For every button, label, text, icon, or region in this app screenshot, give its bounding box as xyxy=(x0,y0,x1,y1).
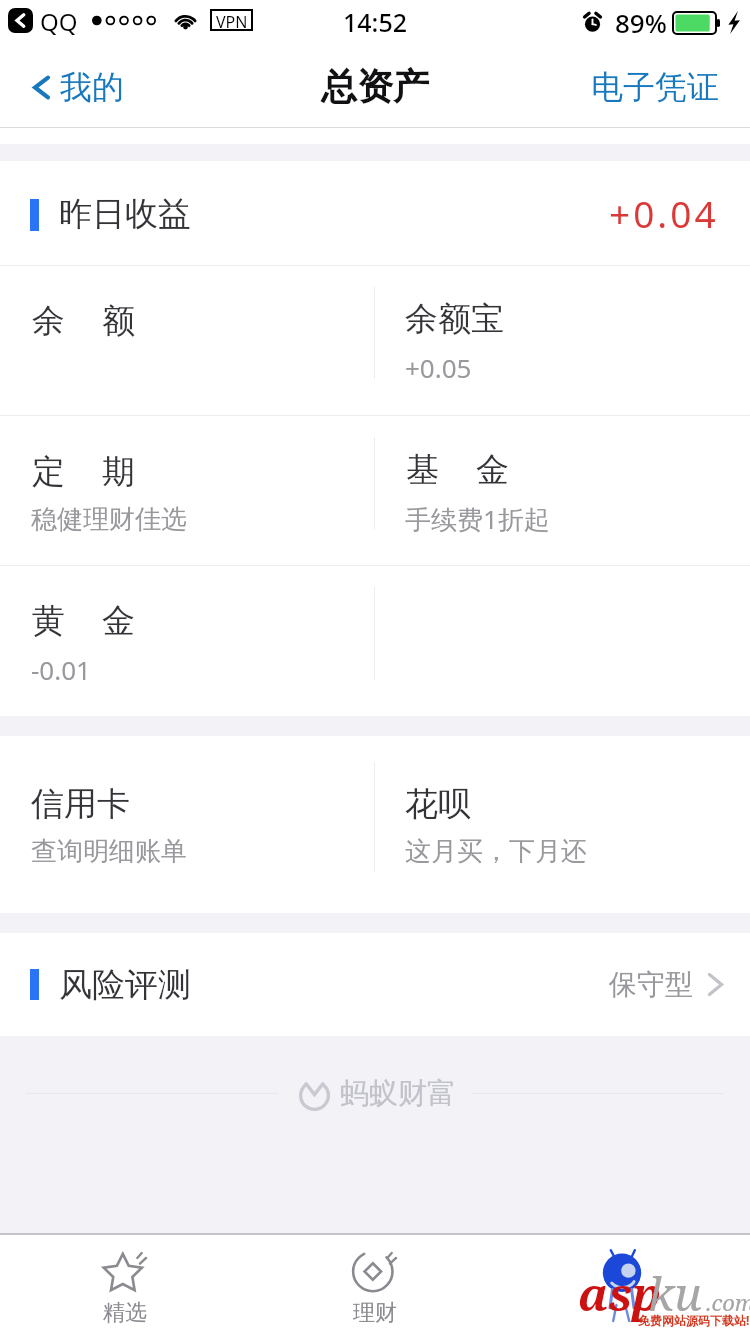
button[interactable]: 资产 xyxy=(500,1235,750,1334)
staticText: 基 金 xyxy=(405,446,510,491)
button[interactable]: 余 额 xyxy=(0,266,374,415)
staticText: VPN xyxy=(216,11,248,29)
staticText: 保守型 xyxy=(609,967,693,1002)
button[interactable]: 精选 xyxy=(0,1235,250,1334)
button[interactable]: 昨日收益 xyxy=(0,161,750,265)
staticText: 免费网站源码下载站! xyxy=(638,1312,750,1328)
staticText: 电子凭证 xyxy=(591,67,719,107)
staticText: 手续费1折起 xyxy=(405,501,550,537)
button[interactable]: 定 期 xyxy=(0,416,374,565)
button[interactable]: 电子凭证 xyxy=(567,55,750,119)
staticText: .com xyxy=(706,1287,750,1317)
staticText: 稳健理财佳选 xyxy=(31,503,187,536)
button[interactable]: 花呗 xyxy=(375,736,750,913)
button[interactable]: 余额宝 xyxy=(375,266,750,415)
staticText: 余 额 xyxy=(31,297,136,342)
staticText: 蚂蚁财富 xyxy=(340,1075,456,1112)
staticText: 余额宝 xyxy=(405,298,504,340)
staticText: 花呗 xyxy=(405,783,471,825)
staticText: 我的 xyxy=(60,67,124,107)
staticText: 这月买，下月还 xyxy=(405,835,587,868)
staticText: 黄 金 xyxy=(31,597,136,642)
staticText: 精选 xyxy=(103,1299,147,1327)
button[interactable]: 我的 xyxy=(0,55,142,119)
staticText: asp xyxy=(578,1262,661,1325)
button[interactable]: 理财 xyxy=(250,1235,500,1334)
button[interactable]: 风险评测 xyxy=(0,933,750,1036)
staticText: ku xyxy=(648,1262,702,1325)
staticText: 风险评测 xyxy=(59,964,191,1006)
button[interactable]: 信用卡 xyxy=(0,736,374,913)
button[interactable]: 黄 金 xyxy=(0,566,374,716)
staticText: +0.05 xyxy=(405,350,472,385)
staticText: -0.01 xyxy=(31,652,91,687)
staticText: 定 期 xyxy=(31,448,136,493)
button[interactable]: 基 金 xyxy=(375,416,750,565)
staticText: +0.04 xyxy=(609,188,719,238)
staticText: 总资产 xyxy=(321,64,429,109)
staticText: 理财 xyxy=(353,1299,397,1327)
staticText: QQ xyxy=(40,5,78,38)
staticText: 查询明细账单 xyxy=(31,835,187,868)
staticText: 89% xyxy=(615,5,667,40)
staticText: 昨日收益 xyxy=(59,193,191,235)
staticText: 14:52 xyxy=(343,5,408,39)
staticText: 信用卡 xyxy=(31,783,130,825)
